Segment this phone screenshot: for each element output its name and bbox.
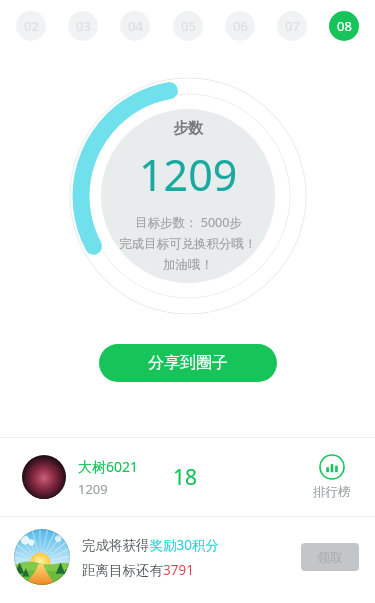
button[interactable]: 07 [277, 11, 307, 41]
staticText: 08 [337, 17, 352, 35]
button[interactable]: 06 [225, 11, 255, 41]
staticText: 大树6021 [78, 457, 139, 476]
button[interactable]: 分享到圈子 [99, 344, 277, 382]
button[interactable]: 排行榜 [309, 450, 355, 504]
button[interactable]: 领取 [301, 543, 359, 571]
staticText: 06 [233, 17, 248, 35]
staticText: 完成目标可兑换积分哦！ [119, 236, 257, 252]
staticText: 步数 [173, 119, 203, 138]
staticText: 02 [24, 17, 39, 35]
staticText: 07 [285, 17, 300, 35]
staticText: 分享到圈子 [148, 353, 228, 373]
staticText: 排行榜 [313, 484, 351, 500]
button[interactable]: 08 [329, 11, 359, 41]
staticText: 05 [181, 17, 196, 35]
staticText: 18 [173, 463, 198, 492]
staticText: 04 [128, 17, 143, 35]
staticText: 03 [76, 17, 91, 35]
staticText: 领取 [317, 549, 343, 565]
button[interactable]: 03 [68, 11, 98, 41]
staticText: 加油哦！ [163, 257, 213, 273]
staticText: 完成将获得奖励30积分 [82, 536, 219, 554]
staticText: 1209 [78, 480, 108, 498]
button[interactable]: 05 [173, 11, 203, 41]
staticText: 目标步数： 5000步 [135, 214, 242, 231]
button[interactable]: 大树6021 [0, 438, 375, 516]
staticText: 距离目标还有3791 [82, 561, 194, 579]
button[interactable]: 04 [120, 11, 150, 41]
button[interactable]: 完成将获得奖励30积分 [0, 517, 375, 597]
button[interactable]: 02 [16, 11, 46, 41]
staticText: 1209 [139, 145, 238, 204]
